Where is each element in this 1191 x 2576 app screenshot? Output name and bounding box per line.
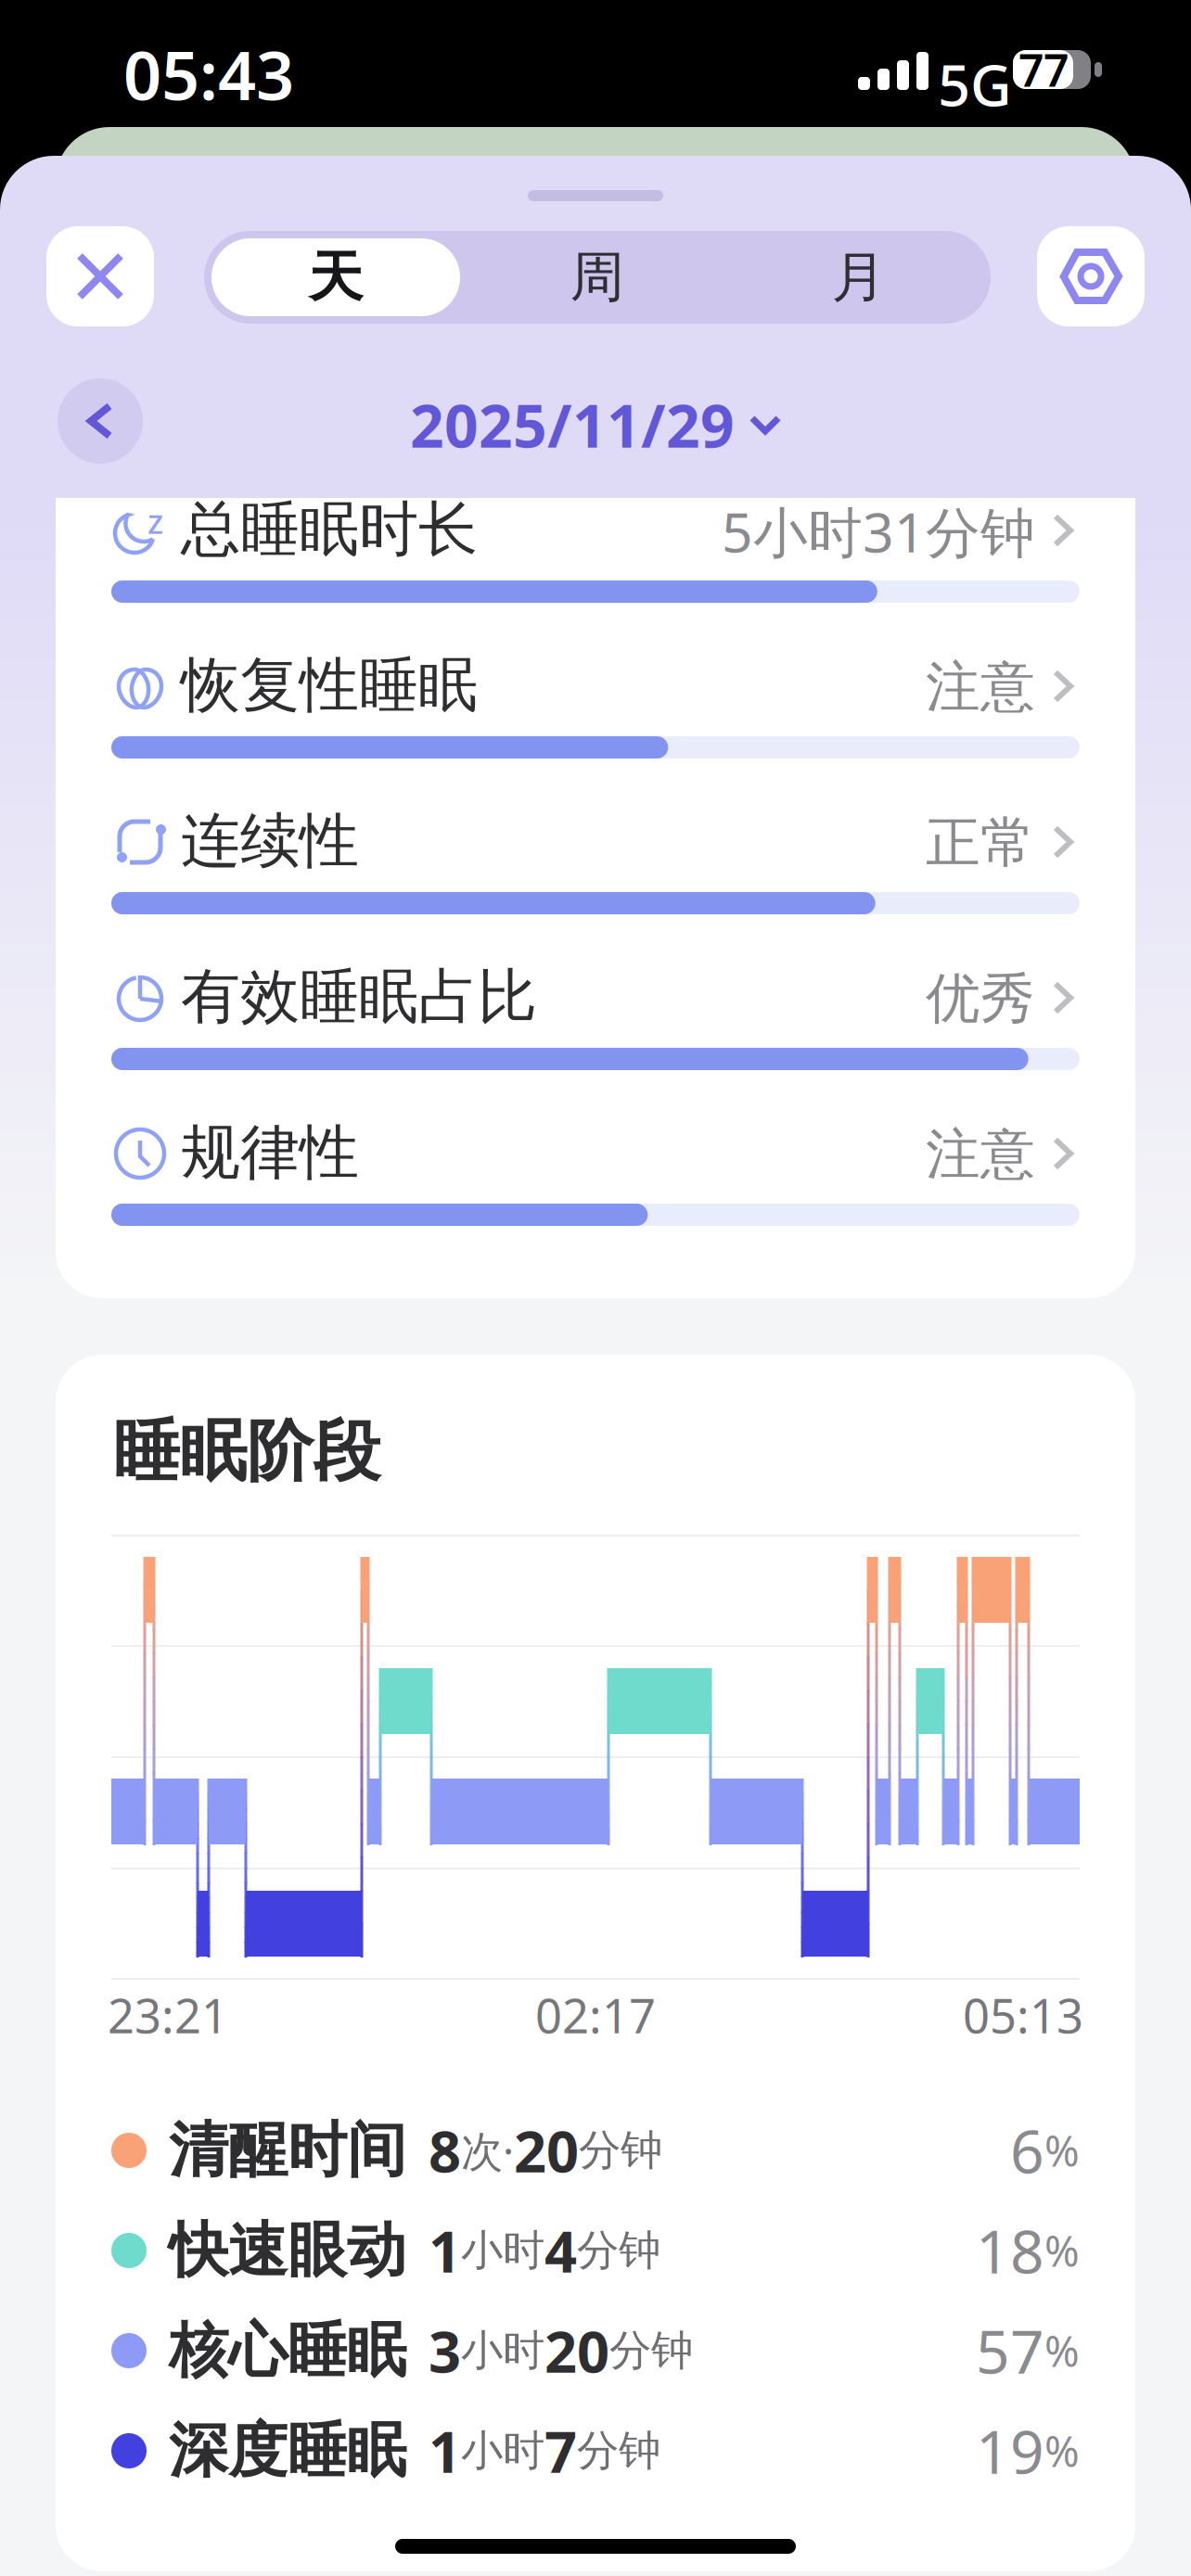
staticText: 周 <box>570 244 625 311</box>
staticText: 深度睡眠 <box>169 2414 406 2487</box>
staticText: 19 <box>976 2411 1044 2490</box>
staticText: 7 <box>544 2413 577 2489</box>
staticText: 优秀 <box>926 965 1035 1032</box>
staticText: 连续性 <box>181 805 359 877</box>
staticText: 有效睡眠占比 <box>181 960 537 1033</box>
staticText: % <box>1044 2323 1080 2379</box>
staticText: 恢复性睡眠 <box>181 649 478 722</box>
staticText: 清醒时间 <box>169 2114 406 2187</box>
button[interactable]: Settings <box>1037 226 1145 326</box>
staticText: 核心睡眠 <box>169 2314 406 2387</box>
staticText: % <box>1044 2122 1080 2178</box>
staticText: z <box>147 499 163 543</box>
staticText: 2025/11/29 <box>410 385 735 464</box>
staticText: 分钟 <box>609 2325 693 2377</box>
staticText: 8 <box>429 2113 461 2188</box>
staticText: 1 <box>429 2213 461 2288</box>
staticText: 睡眠阶段 <box>113 1410 380 1492</box>
staticText: 总睡眠时长 <box>181 493 478 566</box>
button[interactable]: 天 <box>205 231 467 324</box>
staticText: 57 <box>976 2311 1044 2390</box>
staticText: 注意 <box>926 1121 1035 1188</box>
button[interactable]: 恢复性睡眠 <box>111 654 1080 793</box>
staticText: 小时 <box>461 2325 544 2377</box>
staticText: 分钟 <box>577 2425 660 2477</box>
staticText: 77 <box>1018 40 1069 99</box>
button[interactable]: Close <box>46 226 154 326</box>
button[interactable]: 规律性 <box>111 1121 1080 1260</box>
button[interactable]: 有效睡眠占比 <box>111 965 1080 1104</box>
button[interactable]: 2025/11/29 <box>401 388 790 462</box>
staticText: 注意 <box>926 654 1035 721</box>
staticText: 分钟 <box>579 2125 662 2176</box>
staticText: % <box>1044 2223 1080 2278</box>
button[interactable]: 连续性 <box>111 810 1080 949</box>
staticText: 05:43 <box>123 30 294 119</box>
staticText: 4 <box>544 2213 577 2288</box>
staticText: 5小时31分钟 <box>722 495 1035 567</box>
staticText: 05:13 <box>963 1984 1083 2046</box>
staticText: 小时 <box>461 2225 544 2276</box>
staticText: 快速眼动 <box>169 2214 406 2287</box>
staticText: 23:21 <box>108 1984 228 2046</box>
staticText: 正常 <box>926 810 1035 876</box>
button[interactable]: 周 <box>467 231 728 324</box>
staticText: 分钟 <box>577 2225 660 2276</box>
button[interactable]: Previous day <box>58 378 143 464</box>
button[interactable]: 月 <box>728 231 990 324</box>
staticText: % <box>1044 2423 1080 2479</box>
staticText: 5G <box>938 46 1012 122</box>
staticText: 20 <box>514 2113 579 2188</box>
staticText: 小时 <box>461 2425 544 2477</box>
staticText: 月 <box>832 244 886 311</box>
staticText: 天 <box>308 244 363 311</box>
staticText: 规律性 <box>181 1116 359 1189</box>
staticText: 3 <box>429 2313 461 2388</box>
staticText: 18 <box>976 2211 1044 2290</box>
staticText: 次· <box>461 2122 514 2178</box>
staticText: 1 <box>429 2413 461 2489</box>
staticText: 6 <box>1010 2111 1044 2190</box>
staticText: 02:17 <box>535 1984 656 2046</box>
button[interactable]: z <box>111 498 1080 637</box>
staticText: 20 <box>544 2313 609 2388</box>
